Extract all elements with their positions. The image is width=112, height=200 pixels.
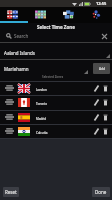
staticText: Select Time Zone — [37, 24, 75, 30]
staticText: London — [36, 88, 47, 92]
staticText: Mariehamn — [4, 66, 29, 72]
staticText: Madrid — [36, 117, 47, 121]
button[interactable]: Flags — [0, 7, 28, 20]
staticText: Reset — [5, 189, 17, 195]
staticText: 12:55 — [96, 1, 107, 6]
button[interactable]: Mariehamn — [0, 60, 89, 75]
button[interactable]: Toronto — [0, 95, 112, 109]
staticText: Done — [95, 189, 107, 195]
button[interactable]: Edit London — [92, 81, 101, 95]
button[interactable]: Madrid — [0, 110, 112, 124]
staticText: Selected Zones — [42, 75, 64, 79]
button[interactable]: Edit Toronto — [92, 95, 101, 109]
button[interactable]: Aaland Islands — [0, 43, 112, 59]
button[interactable]: Zones — [84, 7, 112, 20]
staticText: Add — [99, 67, 105, 71]
button[interactable]: Calcutta — [0, 124, 112, 138]
button[interactable]: Reset — [3, 187, 19, 197]
button[interactable]: List — [28, 7, 56, 20]
button[interactable]: London — [0, 81, 112, 95]
button[interactable]: Add — [93, 63, 110, 74]
staticText: Aaland Islands — [4, 50, 35, 56]
button[interactable]: Delete Madrid — [101, 110, 110, 124]
button[interactable]: Delete Calcutta — [101, 124, 110, 138]
staticText: Search — [14, 33, 29, 39]
button[interactable]: Edit Madrid — [92, 110, 101, 124]
staticText: Calcutta — [36, 131, 48, 135]
button[interactable]: Done — [92, 187, 110, 197]
button[interactable]: Search — [0, 30, 112, 42]
button[interactable]: Delete London — [101, 81, 110, 95]
button[interactable]: Map — [56, 7, 84, 20]
button[interactable]: Clear search — [98, 30, 110, 42]
button[interactable]: Edit Calcutta — [92, 124, 101, 138]
button[interactable]: Delete Toronto — [101, 95, 110, 109]
staticText: Toronto — [36, 102, 48, 106]
